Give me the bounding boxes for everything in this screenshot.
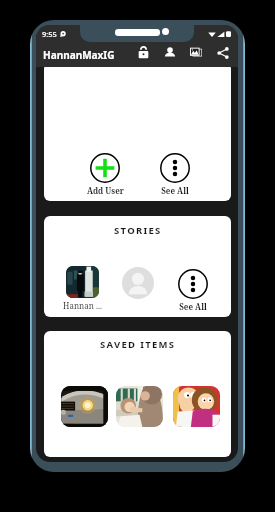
button[interactable]: Share [214,45,232,60]
button[interactable]: See All [155,153,195,196]
staticText: STORIES [114,224,162,237]
button[interactable]: Add User [85,153,125,196]
staticText: Add User [87,185,124,196]
button[interactable]: Saved car photo [61,386,108,427]
staticText: 9:55 [42,29,57,39]
staticText: See All [161,185,189,196]
button[interactable]: Hannan ... [62,266,102,311]
button[interactable]: Saved cartoon photo [173,386,220,427]
button[interactable]: Lock [134,45,152,60]
staticText: See All [179,301,207,312]
staticText: Hannan ... [63,300,102,311]
button[interactable]: Profile [161,45,179,60]
button[interactable]: Gallery [187,45,205,60]
staticText: SAVED ITEMS [100,338,176,351]
staticText: HannanMaxIG [43,48,115,62]
button[interactable]: See All [173,269,213,312]
button[interactable]: Saved family photo [116,386,163,427]
button[interactable]: Add story [122,267,154,299]
